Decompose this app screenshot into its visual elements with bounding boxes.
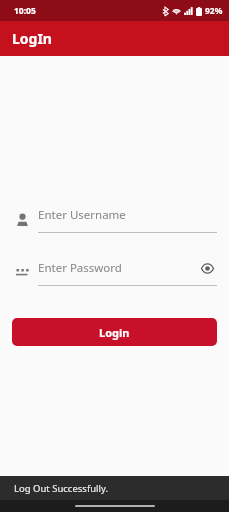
staticText: Login [99, 325, 130, 340]
button[interactable]: Enter Password [12, 257, 217, 286]
staticText: 10:05 [14, 5, 36, 17]
button[interactable]: Enter Username [12, 204, 217, 233]
button[interactable]: Show password [197, 258, 217, 278]
staticText: Enter Username [38, 207, 126, 223]
staticText: LogIn [12, 29, 52, 48]
button[interactable]: Login [12, 318, 217, 346]
staticText: Log Out Successfully. [14, 482, 108, 495]
staticText: Enter Password [38, 260, 197, 276]
staticText: 92% [205, 5, 223, 17]
